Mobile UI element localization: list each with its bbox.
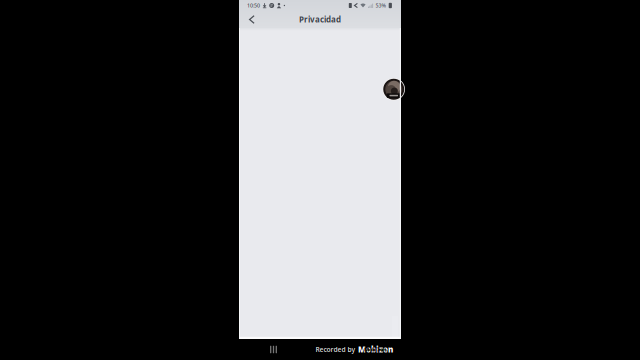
button[interactable]: Back — [243, 11, 261, 28]
staticText: 53% — [375, 2, 386, 9]
staticText: 10:50 — [247, 2, 260, 9]
staticText: Mobizen — [364, 346, 387, 353]
staticText: Mobizen — [358, 344, 393, 355]
button[interactable]: Recents — [266, 342, 281, 357]
staticText: Privacidad — [299, 14, 341, 25]
staticText: Recorded by — [315, 345, 355, 354]
